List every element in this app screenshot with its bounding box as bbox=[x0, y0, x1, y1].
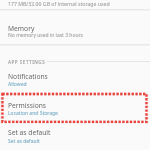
staticText: Set as default bbox=[8, 128, 51, 137]
button[interactable]: 177 MB/32.00 GB of internal storage used bbox=[0, 0, 150, 9]
button[interactable]: Memory bbox=[0, 10, 150, 44]
staticText: Set as default bbox=[8, 138, 40, 145]
staticText: Permissions bbox=[8, 101, 47, 110]
staticText: No memory used in last 3 hours bbox=[8, 32, 84, 39]
staticText: 177 MB/32.00 GB of internal storage used bbox=[8, 0, 110, 7]
staticText: APP SETTINGS bbox=[8, 59, 46, 65]
staticText: Location and Storage bbox=[8, 110, 58, 117]
staticText: Allowed bbox=[8, 81, 27, 88]
staticText: Memory bbox=[8, 24, 35, 33]
button[interactable]: Permissions bbox=[0, 94, 150, 122]
staticText: Notifications bbox=[8, 72, 48, 81]
button[interactable]: Notifications bbox=[0, 67, 150, 90]
button[interactable]: Set as default bbox=[0, 123, 150, 148]
